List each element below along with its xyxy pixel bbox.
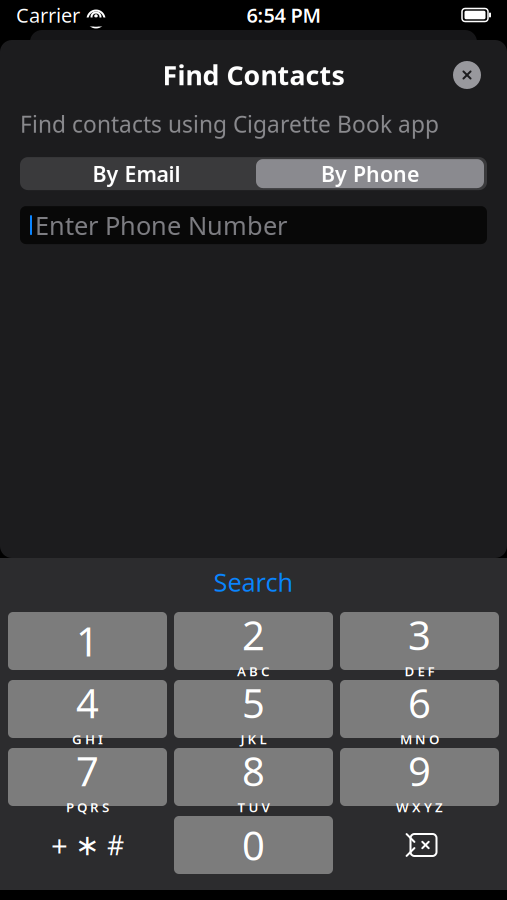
button[interactable]: 1: [8, 612, 167, 670]
staticText: 7: [76, 744, 99, 797]
staticText: #: [107, 827, 124, 863]
button[interactable]: Close: [453, 61, 481, 89]
button[interactable]: 9: [340, 748, 499, 806]
staticText: M N O: [400, 730, 439, 748]
staticText: 6: [408, 676, 431, 729]
staticText: 3: [408, 608, 431, 661]
staticText: A B C: [237, 662, 270, 680]
button[interactable]: 3: [340, 612, 499, 670]
button[interactable]: 6: [340, 680, 499, 738]
button[interactable]: 5: [174, 680, 333, 738]
button[interactable]: 8: [174, 748, 333, 806]
staticText: 8: [242, 744, 265, 797]
staticText: 6:54 PM: [246, 2, 321, 28]
staticText: 0: [242, 818, 265, 871]
staticText: G H I: [72, 730, 103, 748]
staticText: +: [51, 825, 68, 864]
staticText: Find contacts using Cigarette Book app: [20, 109, 439, 139]
staticText: Carrier: [16, 2, 80, 28]
staticText: 5: [242, 676, 265, 729]
staticText: 1: [76, 614, 99, 667]
button[interactable]: Delete: [340, 816, 499, 874]
staticText: By Phone: [321, 159, 419, 188]
button[interactable]: By Phone: [256, 159, 484, 188]
staticText: ∗: [75, 828, 100, 862]
button[interactable]: 2: [174, 612, 333, 670]
button[interactable]: 4: [8, 680, 167, 738]
button[interactable]: 0: [174, 816, 333, 874]
staticText: P Q R S: [66, 798, 109, 816]
staticText: By Email: [92, 159, 180, 188]
staticText: Enter Phone Number: [35, 208, 287, 242]
staticText: D E F: [404, 662, 434, 680]
staticText: Search: [213, 565, 293, 599]
button[interactable]: Search: [0, 558, 507, 606]
staticText: T U V: [237, 798, 269, 816]
staticText: Find Contacts: [162, 57, 344, 93]
button[interactable]: Plus, star, pound: [8, 816, 167, 874]
staticText: W X Y Z: [396, 798, 443, 816]
staticText: 9: [408, 744, 431, 797]
button[interactable]: 7: [8, 748, 167, 806]
staticText: J K L: [240, 730, 266, 748]
staticText: 4: [76, 676, 99, 729]
staticText: 2: [242, 608, 265, 661]
button[interactable]: By Email: [20, 157, 253, 190]
